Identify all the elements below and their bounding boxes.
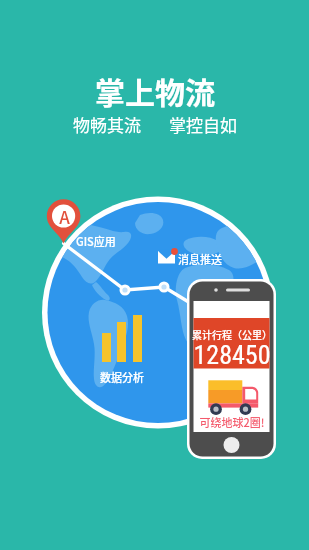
staticText: A [59,204,70,229]
button[interactable]: 数据分析 [100,369,144,385]
button[interactable]: GIS应用 [76,233,116,249]
staticText: 消息推送 [178,251,222,267]
staticText: 物畅其流 [73,112,141,137]
button[interactable]: 消息推送 [178,251,222,267]
button[interactable]: Location A [48,200,80,232]
staticText: 掌控自如 [169,112,237,137]
staticText: 可绕地球2圈! [199,414,265,430]
staticText: 累计行程（公里） [192,327,272,341]
staticText: 128450 [193,340,271,370]
staticText: 数据分析 [100,369,144,385]
staticText: 掌上物流 [95,69,215,112]
staticText: GIS应用 [76,233,116,249]
